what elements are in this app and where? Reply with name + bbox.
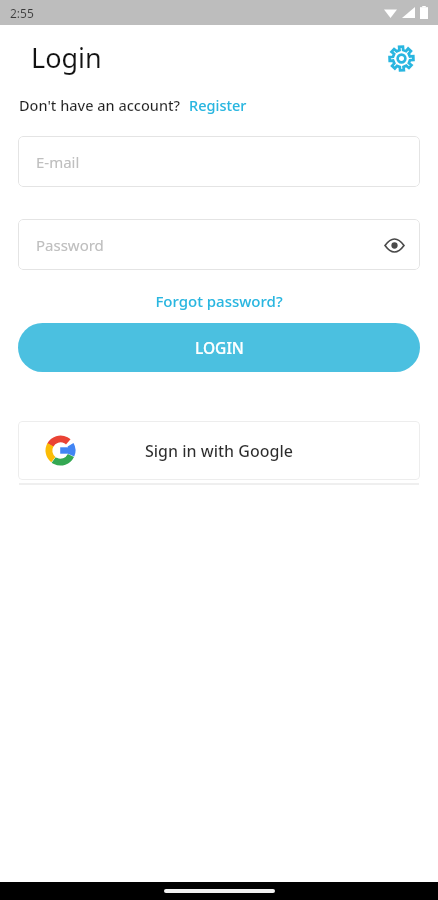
staticText: Login	[31, 39, 102, 76]
button[interactable]: Password	[18, 219, 420, 270]
button[interactable]: LOGIN	[18, 323, 420, 372]
button[interactable]: Register	[188, 93, 248, 117]
staticText: 2:55	[10, 5, 34, 21]
staticText: Sign in with Google	[145, 440, 293, 462]
button[interactable]: Show password	[377, 228, 411, 262]
staticText: Password	[36, 235, 104, 255]
staticText: LOGIN	[195, 337, 244, 358]
staticText: Register	[189, 95, 247, 115]
button[interactable]: E-mail	[18, 136, 420, 187]
staticText: E-mail	[36, 152, 80, 172]
button[interactable]: Settings	[382, 39, 420, 77]
button[interactable]: Forgot password?	[149, 288, 289, 314]
staticText: Forgot password?	[155, 291, 283, 311]
button[interactable]: Sign in with Google	[18, 421, 420, 480]
staticText: Don't have an account?	[19, 95, 181, 115]
